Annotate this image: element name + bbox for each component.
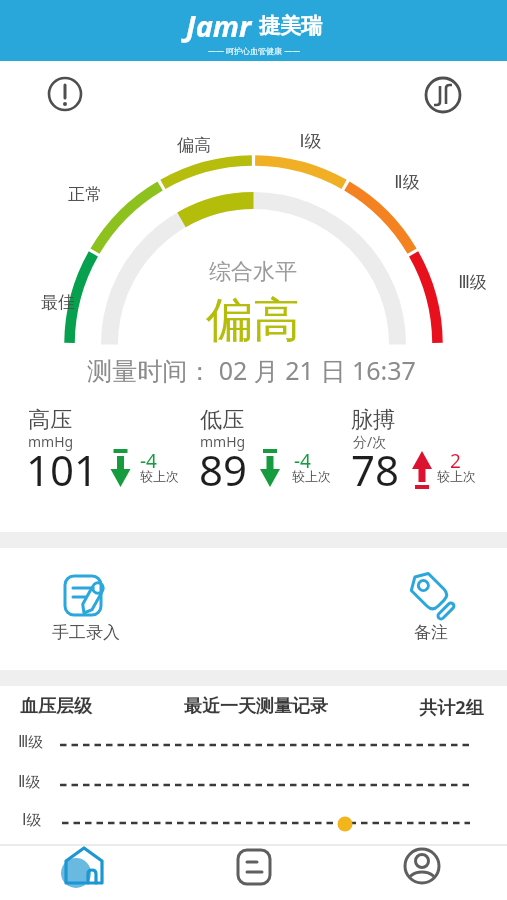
button[interactable] bbox=[45, 74, 85, 114]
button[interactable] bbox=[169, 845, 338, 900]
staticText: 高压 bbox=[28, 406, 72, 434]
staticText: Ⅰ级 bbox=[22, 811, 42, 830]
staticText: 最佳 bbox=[41, 292, 75, 313]
staticText: 较上次 bbox=[292, 468, 331, 484]
staticText: 共计2组 bbox=[419, 695, 484, 720]
staticText: 测量时间： 02 月 21 日 16:37 bbox=[87, 353, 416, 387]
staticText: 偏高 bbox=[177, 135, 211, 156]
staticText: 2 bbox=[450, 448, 461, 474]
staticText: 101 bbox=[26, 441, 99, 498]
button[interactable] bbox=[50, 565, 122, 650]
staticText: 低压 bbox=[200, 406, 244, 434]
staticText: 较上次 bbox=[437, 468, 476, 484]
staticText: 正常 bbox=[68, 184, 102, 205]
staticText: —— 呵护心血管健康 —— bbox=[208, 45, 301, 56]
button[interactable] bbox=[338, 845, 507, 900]
staticText: Ⅰ级 bbox=[299, 131, 322, 152]
staticText: 78 bbox=[351, 441, 400, 498]
staticText: Ⅱ级 bbox=[18, 773, 41, 792]
staticText: 分/次 bbox=[353, 432, 387, 451]
staticText: Ⅱ级 bbox=[394, 172, 420, 193]
staticText: Jamr bbox=[186, 6, 252, 45]
staticText: -4 bbox=[140, 448, 157, 474]
staticText: 脉搏 bbox=[351, 406, 395, 434]
staticText: 手工录入 bbox=[52, 622, 120, 643]
button[interactable] bbox=[422, 74, 464, 116]
staticText: 备注 bbox=[414, 622, 448, 643]
staticText: mmHg bbox=[28, 432, 74, 451]
staticText: 偏高 bbox=[206, 291, 300, 350]
staticText: mmHg bbox=[200, 432, 246, 451]
staticText: 综合水平 bbox=[209, 258, 297, 286]
staticText: 89 bbox=[199, 441, 248, 498]
staticText: 较上次 bbox=[140, 468, 179, 484]
staticText: Ⅲ级 bbox=[458, 272, 487, 293]
button[interactable] bbox=[396, 565, 468, 650]
staticText: 捷美瑞 bbox=[259, 13, 322, 39]
staticText: Ⅲ级 bbox=[18, 733, 44, 752]
button[interactable] bbox=[0, 845, 169, 900]
staticText: -4 bbox=[294, 448, 311, 474]
staticText: 血压层级 bbox=[20, 695, 92, 718]
staticText: 最近一天测量记录 bbox=[184, 695, 328, 718]
